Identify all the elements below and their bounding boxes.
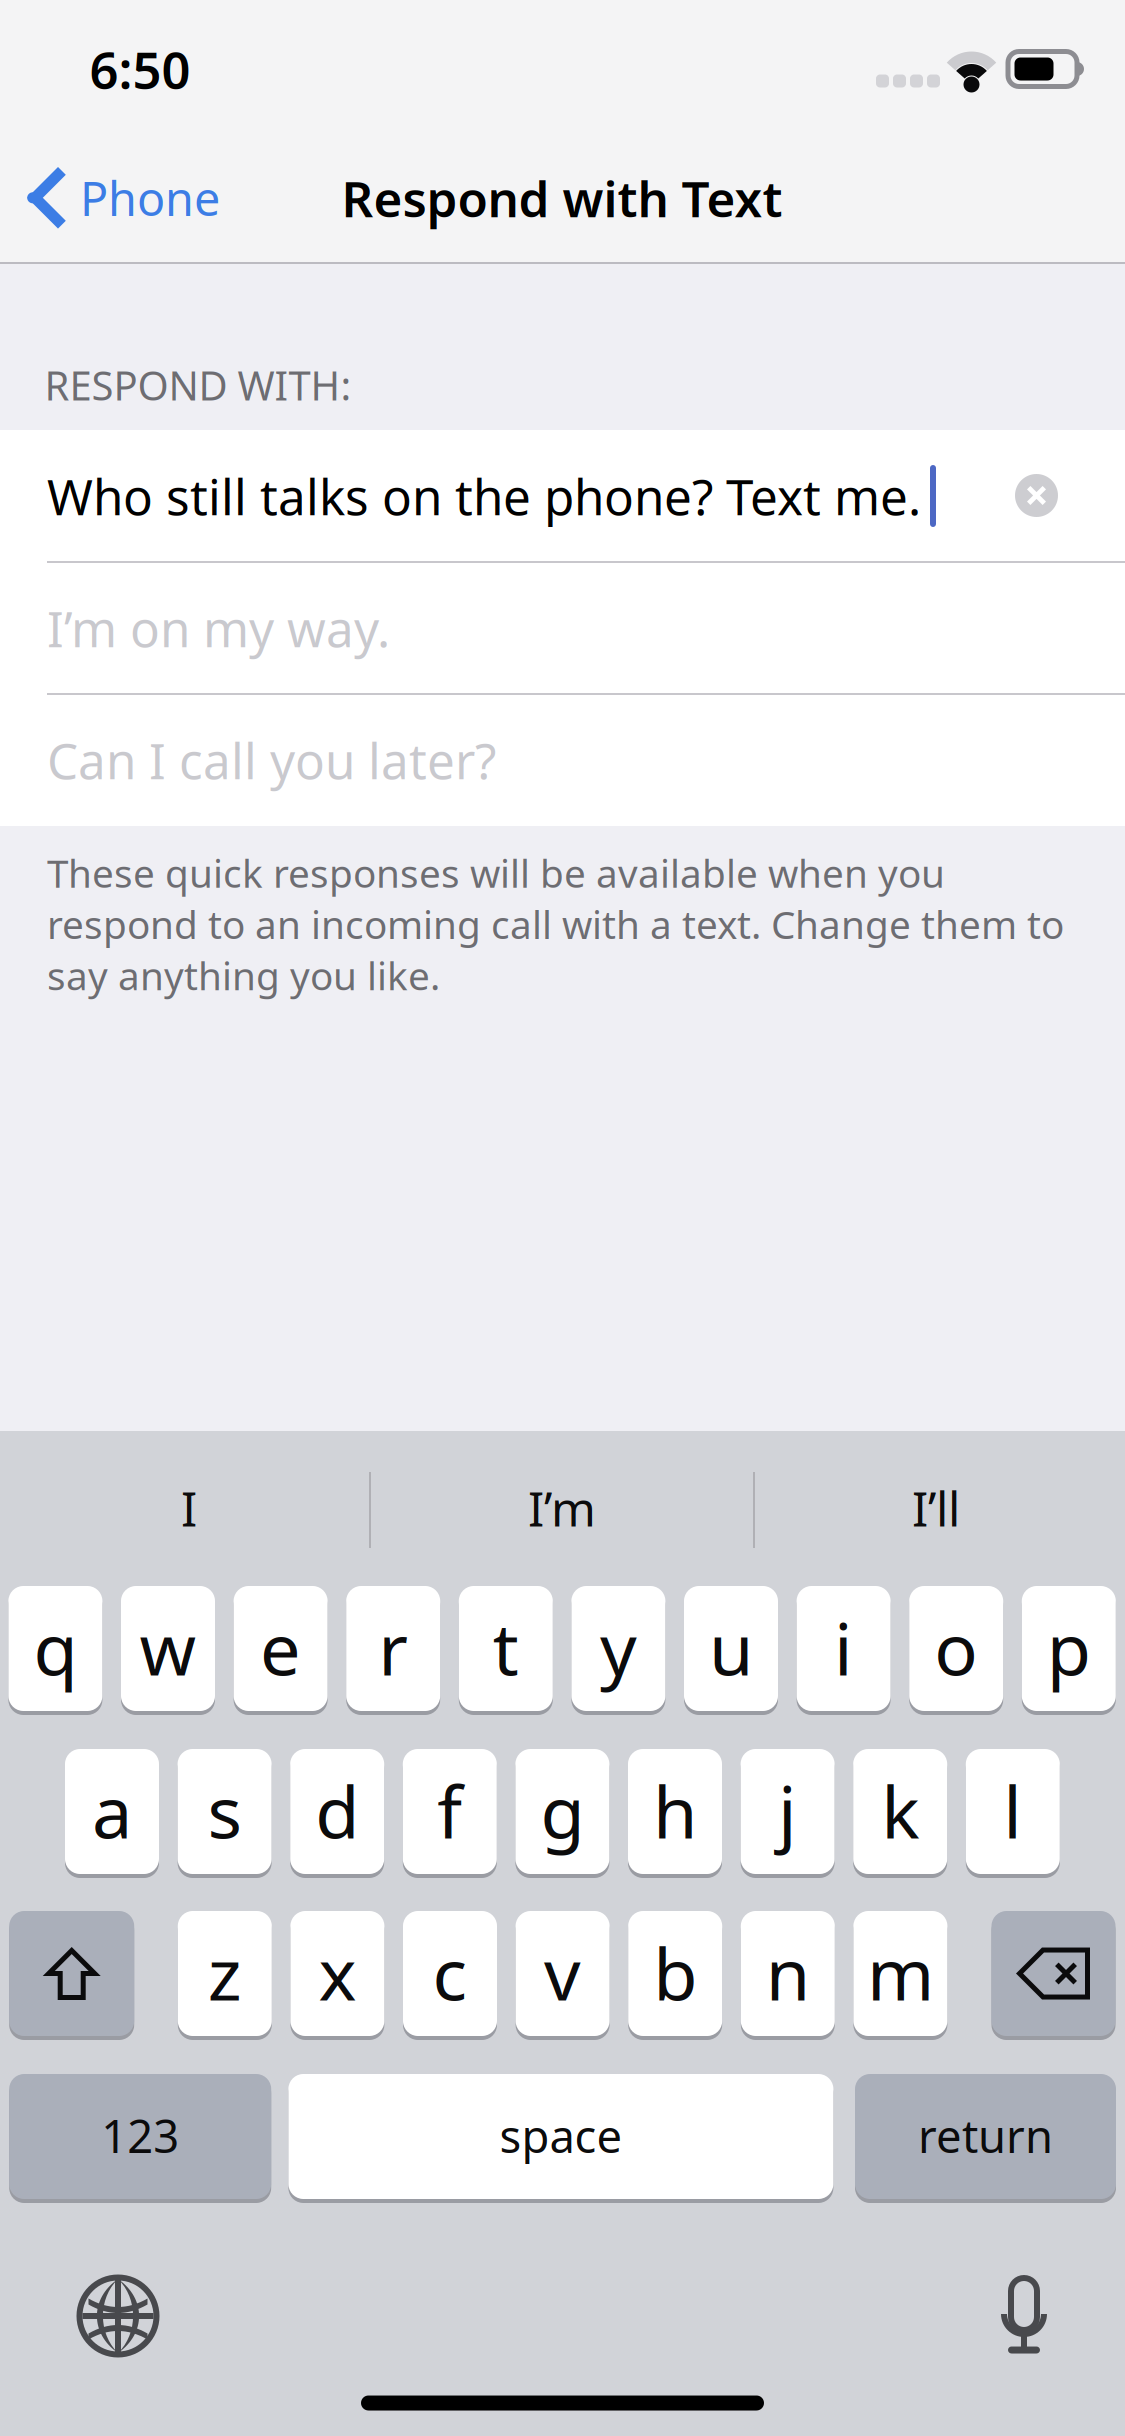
button[interactable]: k (853, 1749, 947, 1878)
staticText: e (260, 1600, 301, 1695)
button[interactable]: 123 (9, 2074, 271, 2203)
staticText: x (318, 1925, 356, 2020)
staticText: o (934, 1600, 978, 1695)
button[interactable]: o (909, 1586, 1003, 1715)
staticText: I (181, 1476, 197, 1540)
button[interactable]: x (290, 1911, 384, 2040)
button[interactable]: Delete (991, 1911, 1115, 2040)
button[interactable]: return (855, 2074, 1116, 2203)
staticText: Can I call you later? (47, 727, 496, 793)
button[interactable]: i (797, 1586, 891, 1715)
staticText: k (881, 1763, 919, 1858)
staticText: I’m (528, 1476, 596, 1540)
button[interactable]: f (403, 1749, 497, 1878)
staticText: g (540, 1763, 584, 1858)
staticText: i (834, 1600, 853, 1695)
staticText: u (709, 1600, 753, 1695)
staticText: return (918, 2105, 1053, 2166)
staticText: These quick responses will be available … (47, 847, 1064, 1001)
button[interactable]: I (9, 1431, 369, 1585)
button[interactable]: Who still talks on the phone? Text me. (0, 430, 1125, 562)
staticText: l (1003, 1763, 1022, 1858)
button[interactable]: z (178, 1911, 272, 2040)
button[interactable]: Dictate (969, 2251, 1079, 2381)
button[interactable]: c (403, 1911, 497, 2040)
button[interactable]: w (121, 1586, 215, 1715)
staticText: I’m on my way. (47, 595, 390, 661)
button[interactable]: j (741, 1749, 835, 1878)
staticText: z (208, 1925, 242, 2020)
button[interactable]: r (346, 1586, 440, 1715)
button[interactable]: Phone (0, 132, 244, 264)
button[interactable]: Shift (9, 1911, 134, 2040)
staticText: Respond with Text (341, 165, 782, 231)
staticText: p (1047, 1600, 1091, 1695)
button[interactable]: p (1022, 1586, 1116, 1715)
staticText: w (139, 1600, 196, 1695)
staticText: Who still talks on the phone? Text me. (47, 463, 921, 529)
button[interactable]: q (8, 1586, 102, 1715)
staticText: f (437, 1763, 462, 1858)
button[interactable]: I’m on my way. (0, 562, 1125, 694)
button[interactable]: n (741, 1911, 835, 2040)
staticText: d (315, 1763, 359, 1858)
staticText: r (378, 1600, 408, 1695)
staticText: space (499, 2105, 622, 2166)
button[interactable]: s (178, 1749, 272, 1878)
staticText: h (653, 1763, 697, 1858)
button[interactable]: d (290, 1749, 384, 1878)
button[interactable]: t (459, 1586, 553, 1715)
button[interactable]: v (516, 1911, 610, 2040)
staticText: v (544, 1925, 581, 2020)
staticText: m (867, 1925, 934, 2020)
staticText: 6:50 (89, 35, 190, 103)
button[interactable]: l (966, 1749, 1060, 1878)
button[interactable]: e (234, 1586, 328, 1715)
staticText: n (766, 1925, 810, 2020)
staticText: a (92, 1763, 132, 1858)
staticText: j (778, 1763, 797, 1858)
button[interactable]: y (571, 1586, 665, 1715)
button[interactable]: u (684, 1586, 778, 1715)
button[interactable]: space (288, 2074, 833, 2203)
staticText: y (600, 1600, 637, 1695)
staticText: I’ll (912, 1476, 960, 1540)
button[interactable]: h (628, 1749, 722, 1878)
button[interactable]: Switch keyboard (53, 2251, 183, 2381)
staticText: c (432, 1925, 467, 2020)
staticText: t (493, 1600, 519, 1695)
button[interactable]: I’m (382, 1431, 742, 1585)
button[interactable]: I’ll (756, 1431, 1116, 1585)
staticText: 123 (101, 2105, 179, 2166)
staticText: b (653, 1925, 697, 2020)
button[interactable]: b (628, 1911, 722, 2040)
staticText: q (33, 1600, 77, 1695)
button[interactable]: Can I call you later? (0, 694, 1125, 826)
staticText: Phone (80, 167, 220, 229)
button[interactable]: a (65, 1749, 159, 1878)
staticText: RESPOND WITH: (44, 358, 351, 411)
button[interactable]: m (853, 1911, 947, 2040)
button[interactable]: g (515, 1749, 609, 1878)
staticText: s (208, 1763, 242, 1858)
